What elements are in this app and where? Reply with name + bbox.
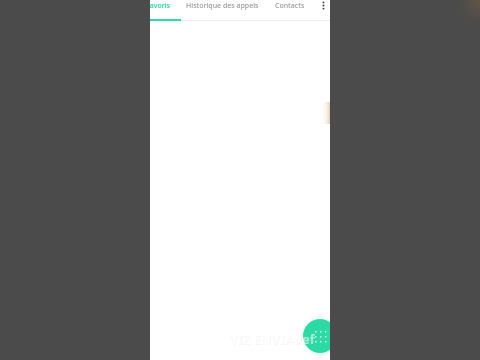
staticText: Contacts xyxy=(275,1,305,11)
staticText: VIZ ENVIAdef xyxy=(229,330,315,344)
button[interactable]: Contacts xyxy=(262,0,318,15)
staticText: Favoris xyxy=(150,1,170,11)
button[interactable]: Dialpad xyxy=(303,319,330,353)
staticText: Historique des appels xyxy=(186,1,259,11)
staticText: VIZ ENVIAdef xyxy=(230,331,316,345)
button[interactable]: Favoris xyxy=(150,0,183,15)
button[interactable]: Historique des appels xyxy=(184,0,260,15)
button[interactable]: More options xyxy=(316,0,330,15)
